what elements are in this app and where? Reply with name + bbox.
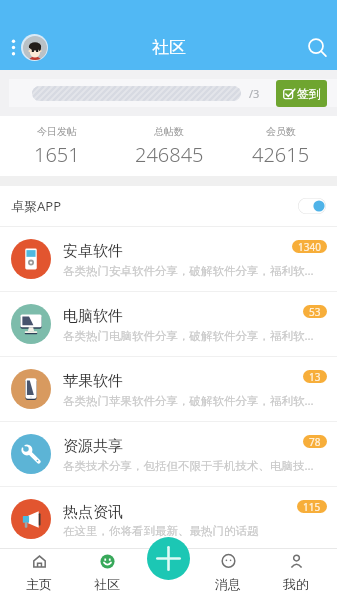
- staticText: 53: [309, 305, 321, 318]
- staticText: 消息: [215, 576, 241, 592]
- button[interactable]: 主页: [5, 554, 73, 596]
- button[interactable]: 我的: [262, 554, 330, 596]
- button[interactable]: 会员数: [225, 125, 337, 168]
- staticText: 主页: [26, 576, 52, 592]
- staticText: 社区: [94, 576, 120, 592]
- button[interactable]: 资源共享: [0, 422, 337, 487]
- staticText: 1651: [34, 141, 80, 168]
- staticText: 总帖数: [154, 125, 184, 138]
- button[interactable]: 总帖数: [113, 125, 225, 168]
- staticText: 42615: [252, 141, 310, 168]
- staticText: /3: [249, 86, 260, 101]
- staticText: 卓聚APP: [11, 197, 62, 215]
- staticText: 资源共享: [63, 437, 123, 456]
- button[interactable]: Profile: [21, 34, 48, 61]
- staticText: 我的: [283, 576, 309, 592]
- staticText: 热点资讯: [63, 503, 123, 522]
- staticText: 13: [309, 370, 321, 383]
- button[interactable]: 签到: [276, 80, 327, 107]
- staticText: 签到: [297, 86, 321, 101]
- button[interactable]: 安卓软件: [0, 227, 337, 292]
- staticText: 今日发帖: [37, 125, 77, 138]
- button[interactable]: 热点资讯: [0, 487, 337, 552]
- staticText: 1340: [298, 240, 321, 253]
- button[interactable]: 卓聚APP: [0, 186, 337, 226]
- button[interactable]: Search: [301, 32, 331, 62]
- button[interactable]: Add post: [147, 537, 190, 580]
- staticText: 电脑软件: [63, 307, 123, 326]
- button[interactable]: More options: [5, 39, 22, 56]
- staticText: 各类技术分享，包括但不限于手机技术、电脑技…: [63, 458, 314, 474]
- staticText: 各类热门苹果软件分享，破解软件分享，福利软…: [63, 393, 314, 409]
- staticText: 会员数: [266, 125, 296, 138]
- button[interactable]: 苹果软件: [0, 357, 337, 422]
- staticText: 246845: [135, 141, 204, 168]
- staticText: 安卓软件: [63, 242, 123, 261]
- button[interactable]: 今日发帖: [0, 125, 113, 168]
- staticText: 苹果软件: [63, 372, 123, 391]
- staticText: 社区: [152, 37, 186, 58]
- button[interactable]: 社区: [73, 554, 141, 596]
- staticText: 78: [309, 435, 321, 448]
- staticText: 在这里，你将看到最新、最热门的话题: [63, 524, 259, 538]
- button[interactable]: 消息: [194, 554, 262, 596]
- staticText: 各类热门电脑软件分享，破解软件分享，福利软…: [63, 328, 314, 344]
- button[interactable]: 电脑软件: [0, 292, 337, 357]
- staticText: 各类热门安卓软件分享，破解软件分享，福利软…: [63, 263, 314, 279]
- staticText: 115: [303, 500, 321, 513]
